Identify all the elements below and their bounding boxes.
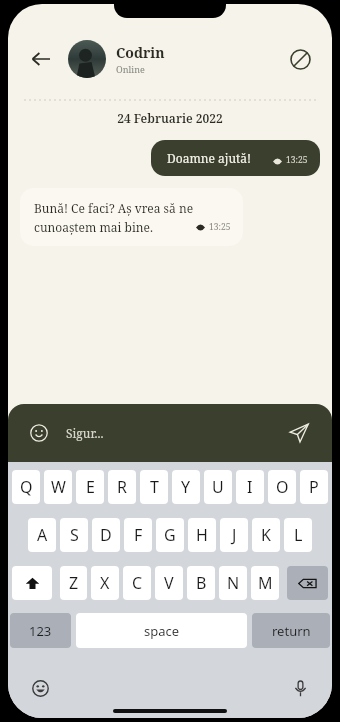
button[interactable]: J xyxy=(220,518,248,552)
staticText: C xyxy=(132,572,143,594)
button[interactable]: Back xyxy=(24,42,58,76)
staticText: A xyxy=(37,524,48,546)
staticText: Online xyxy=(116,63,145,75)
staticText: H xyxy=(196,524,208,546)
button[interactable]: V xyxy=(155,566,183,600)
staticText: N xyxy=(227,572,240,594)
button[interactable]: U xyxy=(204,470,232,504)
staticText: return xyxy=(272,622,311,640)
staticText: L xyxy=(294,524,303,546)
staticText: D xyxy=(100,524,112,546)
staticText: P xyxy=(309,476,319,498)
staticText: Codrin xyxy=(116,43,165,62)
button[interactable]: space xyxy=(76,613,247,648)
staticText: 13:25 xyxy=(209,221,231,233)
staticText: Q xyxy=(20,476,33,498)
staticText: 13:25 xyxy=(286,154,308,166)
staticText: E xyxy=(86,476,95,498)
button[interactable]: Z xyxy=(60,566,87,600)
staticText: 123 xyxy=(29,622,52,640)
staticText: V xyxy=(164,572,174,594)
button[interactable]: X xyxy=(91,566,119,600)
staticText: Doamne ajută! xyxy=(167,150,251,166)
staticText: O xyxy=(276,476,289,498)
button[interactable]: L xyxy=(284,518,312,552)
staticText: I xyxy=(247,476,253,498)
button[interactable]: D xyxy=(92,518,120,552)
button[interactable]: 123 xyxy=(10,613,71,648)
staticText: U xyxy=(212,476,224,498)
button[interactable]: A xyxy=(28,518,56,552)
staticText: space xyxy=(144,622,180,640)
button[interactable]: I xyxy=(236,470,264,504)
button[interactable]: P xyxy=(300,470,328,504)
button[interactable]: Voice input xyxy=(288,676,312,700)
button[interactable]: Q xyxy=(12,470,40,504)
button[interactable]: M xyxy=(251,566,279,600)
button[interactable]: N xyxy=(219,566,247,600)
button[interactable]: R xyxy=(108,470,136,504)
staticText: Z xyxy=(69,572,79,594)
button[interactable]: Emoji xyxy=(26,420,52,446)
button[interactable]: H xyxy=(188,518,216,552)
staticText: B xyxy=(196,572,207,594)
button[interactable]: Emoji keyboard xyxy=(28,676,52,700)
button[interactable]: T xyxy=(140,470,168,504)
button[interactable]: G xyxy=(156,518,184,552)
button[interactable]: S xyxy=(60,518,88,552)
staticText: Y xyxy=(181,476,191,498)
button[interactable]: K xyxy=(252,518,280,552)
staticText: K xyxy=(261,524,271,546)
button[interactable]: E xyxy=(76,470,104,504)
staticText: X xyxy=(100,572,110,594)
button[interactable]: return xyxy=(252,613,330,648)
button[interactable]: Shift xyxy=(12,566,52,600)
button[interactable]: Doamne ajută! xyxy=(151,140,320,176)
staticText: Bună! Ce faci? Aș vrea să ne xyxy=(34,200,194,216)
button[interactable]: Block xyxy=(284,43,316,75)
button[interactable]: Backspace xyxy=(287,566,328,600)
staticText: W xyxy=(51,476,66,498)
button[interactable]: O xyxy=(268,470,296,504)
staticText: Sigur... xyxy=(66,425,284,441)
staticText: M xyxy=(258,572,273,594)
staticText: F xyxy=(134,524,143,546)
button[interactable]: B xyxy=(187,566,215,600)
staticText: cunoaștem mai bine. xyxy=(34,219,153,235)
button[interactable]: Send xyxy=(284,418,314,448)
staticText: T xyxy=(150,476,159,498)
button[interactable]: W xyxy=(44,470,72,504)
staticText: G xyxy=(164,524,176,546)
staticText: J xyxy=(232,524,237,546)
button[interactable]: F xyxy=(124,518,152,552)
button[interactable]: Y xyxy=(172,470,200,504)
staticText: R xyxy=(117,476,127,498)
staticText: S xyxy=(70,524,79,546)
staticText: 24 Februarie 2022 xyxy=(8,110,332,126)
button[interactable]: C xyxy=(123,566,151,600)
button[interactable]: Bună! Ce faci? Aș vrea să ne xyxy=(20,188,243,246)
